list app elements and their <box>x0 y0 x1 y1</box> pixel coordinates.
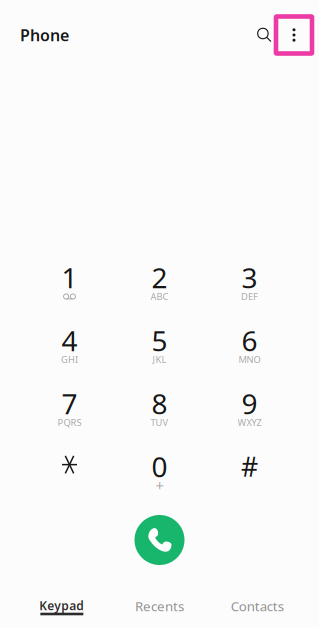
button[interactable]: Contacts <box>208 592 306 622</box>
button[interactable]: 8 <box>114 378 204 441</box>
staticText: 3 <box>241 259 257 296</box>
staticText: 5 <box>151 322 167 359</box>
staticText: 1 <box>61 259 77 296</box>
staticText: JKL <box>152 353 166 366</box>
staticText: DEF <box>241 290 258 303</box>
staticText: Recents <box>135 597 184 615</box>
button[interactable]: Recents <box>111 592 208 622</box>
staticText: 6 <box>241 322 257 359</box>
staticText: 9 <box>241 385 257 422</box>
button[interactable]: 6 <box>204 315 294 378</box>
staticText: 8 <box>151 385 167 422</box>
staticText: 2 <box>151 259 167 296</box>
button[interactable]: 4 <box>24 315 114 378</box>
button[interactable] <box>24 441 114 504</box>
button[interactable]: 7 <box>24 378 114 441</box>
staticText: PQRS <box>57 416 81 429</box>
button[interactable]: Keypad <box>13 592 111 622</box>
staticText: Phone <box>20 24 69 46</box>
staticText: GHI <box>61 353 78 366</box>
button[interactable]: More options <box>274 14 314 55</box>
staticText: TUV <box>150 416 168 429</box>
button[interactable]: 9 <box>204 378 294 441</box>
staticText: 4 <box>61 322 77 359</box>
button[interactable]: # <box>204 441 294 504</box>
staticText: 7 <box>61 385 77 422</box>
button[interactable]: 3 <box>204 252 294 315</box>
button[interactable]: 5 <box>114 315 204 378</box>
staticText: MNO <box>238 353 260 366</box>
staticText: + <box>155 476 163 495</box>
staticText: Contacts <box>231 597 284 615</box>
staticText: WXYZ <box>237 416 261 429</box>
button[interactable]: Search <box>255 23 274 47</box>
button[interactable]: 2 <box>114 252 204 315</box>
button[interactable]: 1 <box>24 252 114 315</box>
button[interactable]: Call <box>134 515 184 565</box>
button[interactable]: 0 <box>114 441 204 504</box>
staticText: ABC <box>150 290 168 303</box>
staticText: 0 <box>151 448 167 485</box>
staticText: # <box>241 449 258 484</box>
staticText: Keypad <box>39 598 84 614</box>
